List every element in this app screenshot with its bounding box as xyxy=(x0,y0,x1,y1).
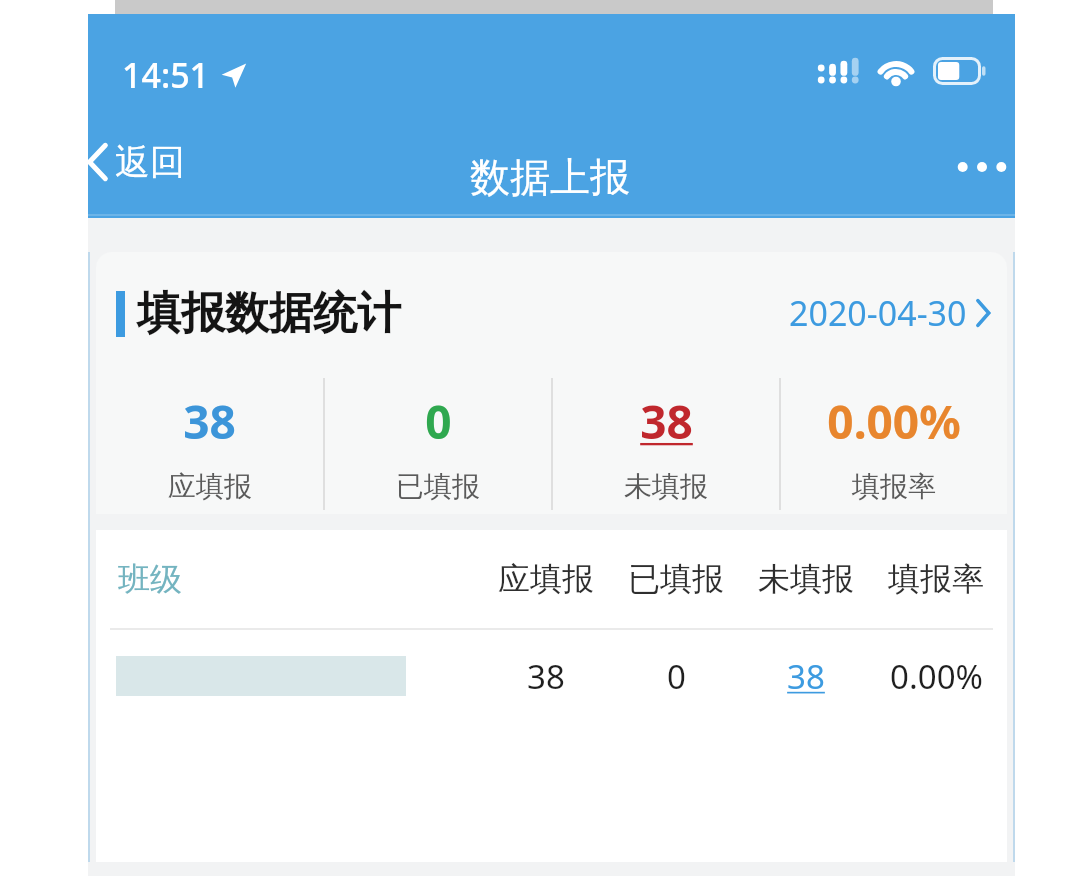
button[interactable]: 返回 xyxy=(76,132,199,192)
staticText: 应填报 xyxy=(168,469,252,504)
staticText: 数据上报 xyxy=(470,152,630,202)
staticText: 38 xyxy=(183,390,236,453)
button[interactable]: 0.00% xyxy=(781,374,1007,514)
staticText: 返回 xyxy=(115,140,185,184)
staticText: 0.00% xyxy=(890,654,983,699)
staticText: 0 xyxy=(425,390,452,453)
button[interactable]: 0 xyxy=(325,374,551,514)
button[interactable]: 38 xyxy=(96,630,1007,722)
staticText: 已填报 xyxy=(628,559,724,599)
staticText: 2020-04-30 xyxy=(789,290,967,336)
staticText: 14:51 xyxy=(122,52,210,98)
staticText: 填报数据统计 xyxy=(137,286,401,341)
staticText: 班级 xyxy=(118,559,182,599)
button[interactable]: More options xyxy=(943,142,1021,192)
staticText: 0.00% xyxy=(827,390,961,453)
staticText: 已填报 xyxy=(396,469,480,504)
button[interactable]: 38 xyxy=(96,374,323,514)
staticText: 应填报 xyxy=(498,559,594,599)
staticText: 填报率 xyxy=(852,469,936,504)
staticText: 38 xyxy=(527,654,565,699)
staticText: 填报率 xyxy=(888,559,984,599)
staticText: 38 xyxy=(640,390,693,453)
staticText: 0 xyxy=(667,654,686,699)
staticText: 未填报 xyxy=(624,469,708,504)
button[interactable]: 2020-04-30 xyxy=(773,276,1007,350)
button[interactable]: 38 xyxy=(553,374,779,514)
staticText: 未填报 xyxy=(758,559,854,599)
staticText: 38 xyxy=(787,654,825,699)
